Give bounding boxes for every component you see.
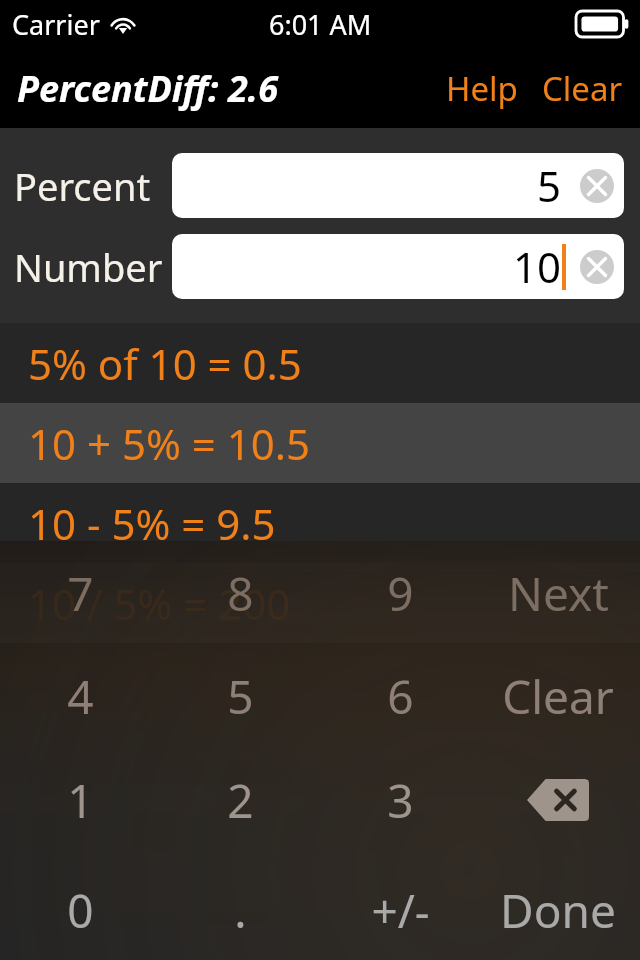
button[interactable]: Next	[486, 555, 630, 631]
button[interactable]: Backspace	[486, 762, 630, 838]
staticText: Help	[446, 66, 518, 111]
staticText: 7	[67, 562, 94, 625]
button[interactable]: +/-	[328, 872, 472, 948]
button[interactable]: 5	[168, 658, 312, 734]
staticText: 4	[67, 665, 94, 728]
staticText: 8	[227, 562, 254, 625]
button[interactable]: 10	[172, 234, 624, 299]
staticText: 10 / 5% = 200	[28, 575, 291, 632]
staticText: Percent	[14, 160, 151, 212]
staticText: Carrier	[12, 6, 100, 43]
button[interactable]: 10 / 5% = 200	[0, 563, 640, 643]
button[interactable]: 8	[168, 555, 312, 631]
staticText: +/-	[371, 879, 430, 942]
button[interactable]: 3	[328, 762, 472, 838]
staticText: 5	[537, 157, 562, 214]
button[interactable]: Clear Percent	[580, 169, 614, 203]
staticText: 5% of 10 = 0.5	[28, 335, 302, 392]
staticText: 10 - 5% = 9.5	[28, 495, 276, 552]
staticText: Clear	[542, 66, 623, 111]
staticText: Next	[508, 562, 609, 625]
staticText: 1	[67, 769, 94, 832]
button[interactable]: Done	[486, 872, 630, 948]
button[interactable]: .	[168, 872, 312, 948]
button[interactable]: 4	[8, 658, 152, 734]
staticText: 0	[67, 879, 94, 942]
staticText: 3	[387, 769, 414, 832]
button[interactable]: Help	[443, 60, 521, 117]
button[interactable]: Clear	[539, 60, 626, 117]
button[interactable]: 5	[172, 153, 624, 218]
staticText: 6:01 AM	[269, 6, 372, 43]
button[interactable]: 2	[168, 762, 312, 838]
staticText: 6	[387, 665, 414, 728]
button[interactable]: 10 + 5% = 10.5	[0, 403, 640, 483]
button[interactable]: 7	[8, 555, 152, 631]
button[interactable]: 5% of 10 = 0.5	[0, 323, 640, 403]
button[interactable]: Clear Number	[580, 250, 614, 284]
button[interactable]: 1	[8, 762, 152, 838]
staticText: 2	[227, 769, 254, 832]
staticText: 9	[387, 562, 414, 625]
button[interactable]: 6	[328, 658, 472, 734]
button[interactable]: 10 - 5% = 9.5	[0, 483, 640, 563]
staticText: Clear	[502, 665, 614, 728]
staticText: 5	[227, 665, 254, 728]
staticText: 10 + 5% = 10.5	[28, 415, 311, 472]
staticText: Number	[14, 241, 163, 293]
staticText: Done	[500, 879, 616, 942]
button[interactable]: 0	[8, 872, 152, 948]
button[interactable]: 9	[328, 555, 472, 631]
staticText: PercentDiff: 2.6	[17, 64, 278, 113]
staticText: .	[234, 879, 247, 942]
button[interactable]: Clear	[486, 658, 630, 734]
staticText: 10	[513, 238, 562, 295]
